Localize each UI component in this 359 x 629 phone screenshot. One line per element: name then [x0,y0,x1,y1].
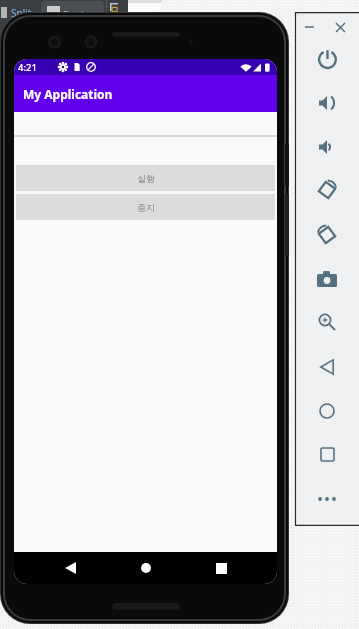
staticText: Split [11,6,32,20]
button[interactable]: Close [331,15,350,39]
button[interactable]: Back [305,355,349,379]
button[interactable]: Home [133,555,159,581]
button[interactable]: 중지 [16,194,275,220]
button[interactable]: Rotate right [305,223,349,247]
button[interactable]: Take screenshot [305,267,349,291]
button[interactable]: Volume down [305,135,349,159]
button[interactable]: Rotate left [305,178,349,202]
staticText: My Application [23,86,113,102]
staticText: 실행 [137,173,155,184]
button[interactable]: Back [57,555,83,581]
staticText: Design [63,8,96,19]
staticText: 중지 [137,202,155,213]
button[interactable]: Recent apps [208,555,234,581]
button[interactable]: Zoom [305,310,349,334]
button[interactable]: More [305,487,349,511]
button[interactable]: Power [305,47,349,71]
button[interactable]: Volume up [305,91,349,115]
button[interactable]: 실행 [16,165,275,191]
button[interactable]: Design [41,1,104,19]
button[interactable]: Minimize [300,15,319,39]
button[interactable]: Home [305,399,349,423]
button[interactable]: Overview [305,442,349,466]
staticText: 4:21 [18,61,37,74]
